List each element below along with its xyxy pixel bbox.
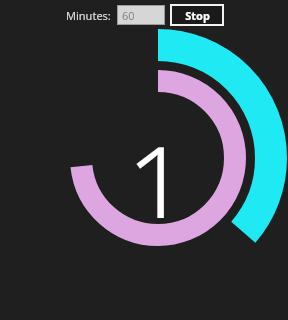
staticText: Stop — [185, 8, 210, 23]
button[interactable]: 60 — [117, 5, 165, 25]
other: Timer progress — [0, 0, 288, 320]
staticText: 60 — [122, 8, 135, 23]
button[interactable]: Stop — [170, 4, 224, 26]
staticText: Minutes: — [66, 8, 111, 23]
staticText: 16 — [98, 108, 218, 218]
